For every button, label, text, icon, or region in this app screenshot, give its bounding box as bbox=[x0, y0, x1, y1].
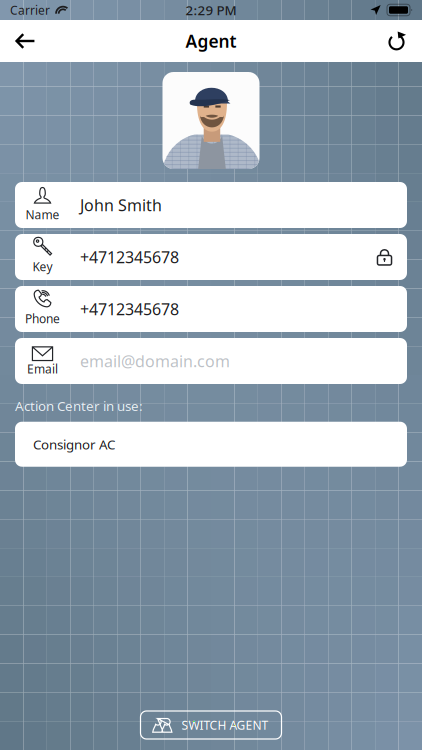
staticText: email@domain.com bbox=[80, 350, 230, 372]
button[interactable]: Phone bbox=[15, 286, 407, 332]
button[interactable]: Back bbox=[0, 20, 51, 62]
button[interactable]: SWITCH AGENT bbox=[140, 711, 281, 739]
staticText: Agent bbox=[185, 29, 236, 52]
staticText: John Smith bbox=[80, 194, 162, 216]
staticText: Carrier bbox=[10, 2, 50, 18]
staticText: Action Center in use: bbox=[15, 397, 143, 415]
button[interactable]: Refresh bbox=[371, 20, 422, 62]
staticText: +4712345678 bbox=[80, 298, 179, 320]
staticText: Name bbox=[25, 206, 59, 222]
staticText: SWITCH AGENT bbox=[181, 717, 268, 733]
staticText: 2:29 PM bbox=[185, 1, 236, 19]
staticText: Phone bbox=[25, 310, 60, 326]
button[interactable]: Consignor AC bbox=[0, 422, 422, 467]
button[interactable]: Key bbox=[15, 234, 407, 280]
staticText: Email bbox=[27, 361, 58, 377]
staticText: Consignor AC bbox=[33, 435, 115, 453]
button[interactable]: Email bbox=[15, 338, 407, 384]
staticText: +4712345678 bbox=[80, 246, 179, 268]
button[interactable]: Name bbox=[15, 182, 407, 228]
staticText: Key bbox=[32, 258, 52, 274]
